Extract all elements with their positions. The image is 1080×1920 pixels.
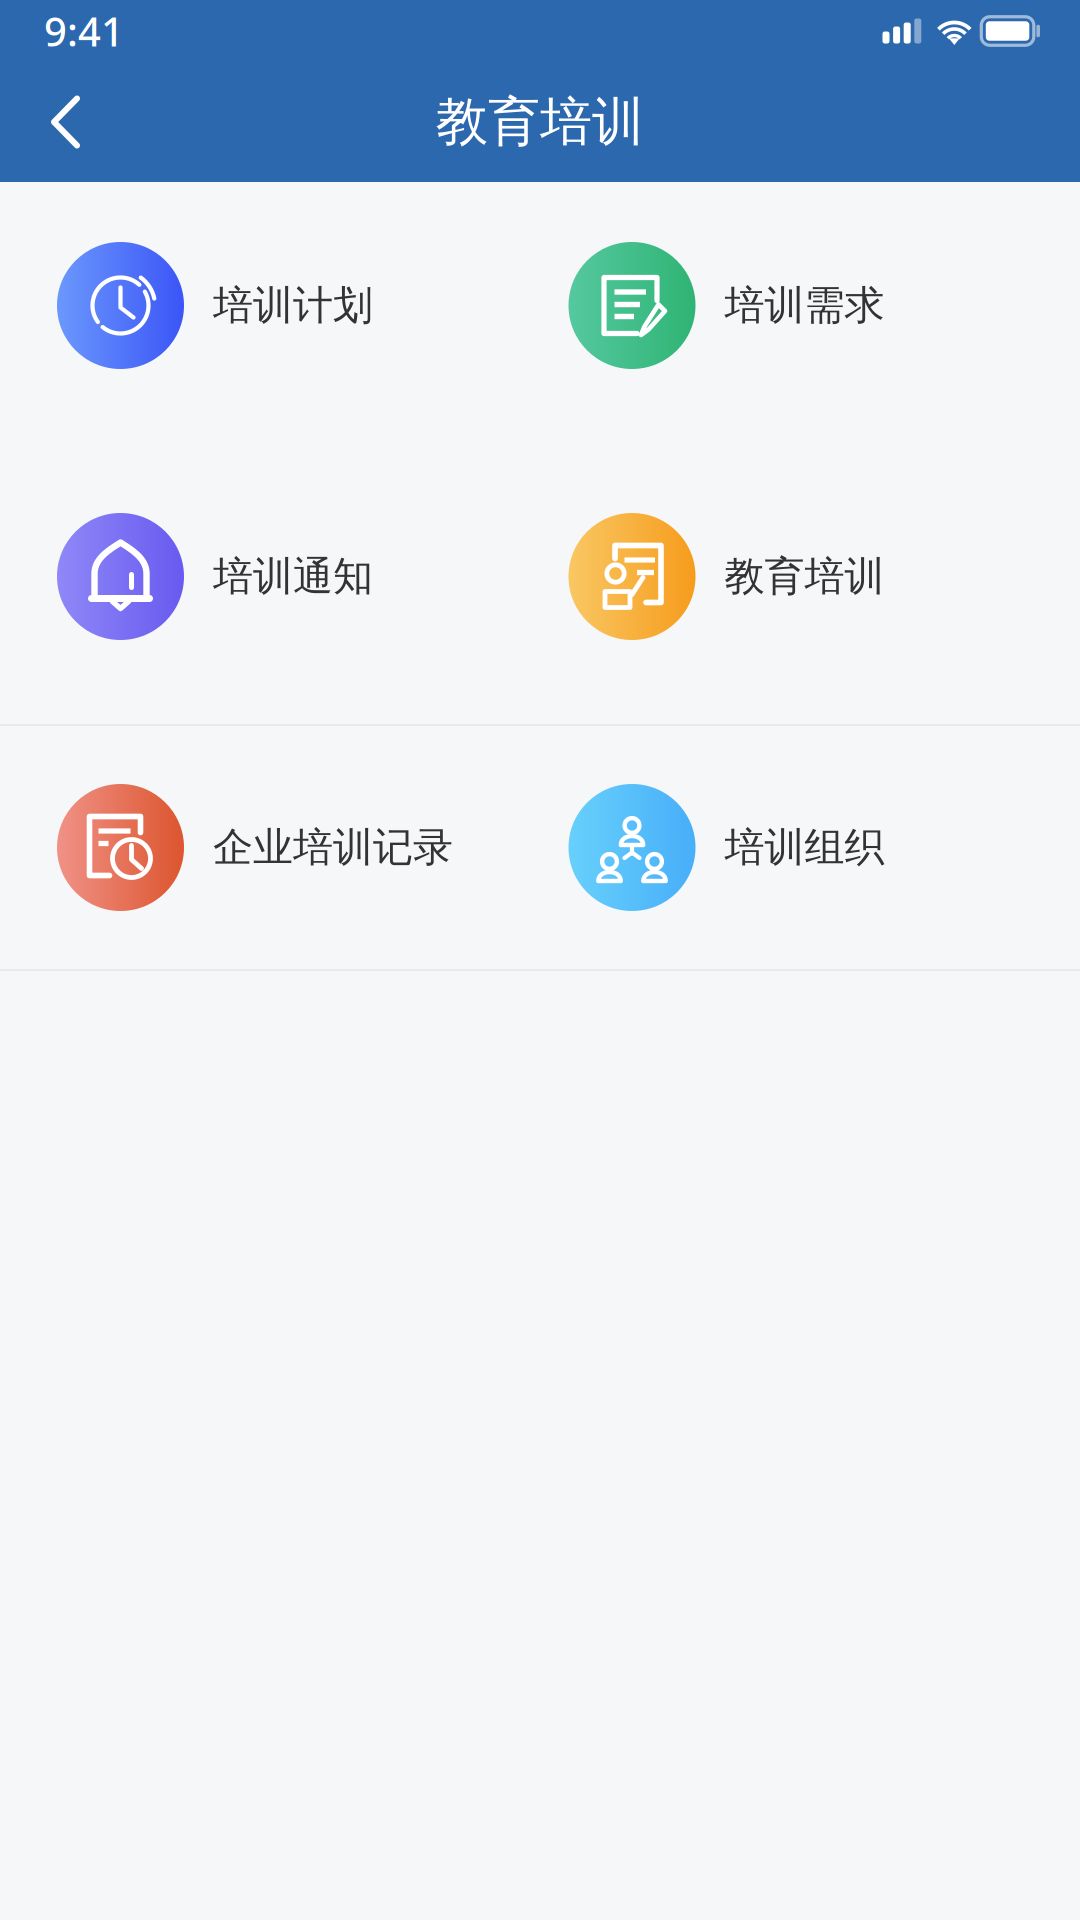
- staticText: 培训通知: [213, 552, 373, 601]
- button[interactable]: 培训需求: [568, 242, 1080, 369]
- button[interactable]: 培训计划: [57, 242, 568, 369]
- staticText: 培训组织: [724, 823, 884, 872]
- button[interactable]: 企业培训记录: [57, 784, 568, 911]
- button[interactable]: 培训组织: [568, 784, 1080, 911]
- staticText: 培训需求: [724, 281, 884, 330]
- button[interactable]: 培训通知: [57, 513, 568, 640]
- staticText: 9:41: [44, 4, 124, 57]
- button[interactable]: 返回: [0, 73, 114, 170]
- staticText: 企业培训记录: [213, 823, 453, 872]
- staticText: 培训计划: [213, 281, 373, 330]
- staticText: 教育培训: [724, 552, 884, 601]
- staticText: 教育培训: [436, 90, 644, 154]
- button[interactable]: 教育培训: [568, 513, 1080, 640]
